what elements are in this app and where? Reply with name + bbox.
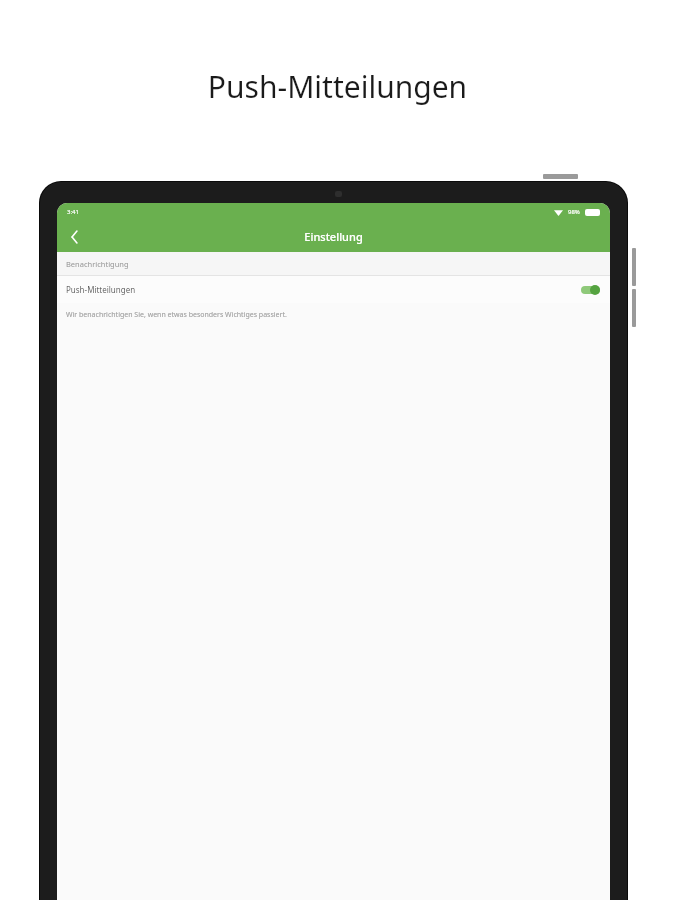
- staticText: 98%: [568, 208, 580, 216]
- staticText: Push-Mitteilungen: [0, 66, 675, 107]
- button[interactable]: Push-Mitteilungen: [57, 276, 610, 303]
- staticText: Benachrichtigung: [66, 259, 129, 269]
- staticText: Push-Mitteilungen: [66, 284, 136, 295]
- staticText: Einstellung: [57, 229, 610, 244]
- staticText: 3:41: [67, 208, 79, 216]
- button[interactable]: Back: [57, 221, 91, 252]
- staticText: Wir benachrichtigen Sie, wenn etwas beso…: [66, 310, 287, 320]
- button[interactable]: Push notifications toggle: [581, 284, 601, 295]
